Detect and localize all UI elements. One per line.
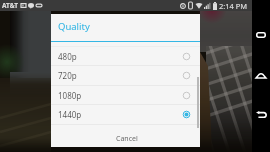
button[interactable]: Recents	[252, 26, 270, 44]
button[interactable]: 480p	[51, 47, 200, 65]
button[interactable]: Cancel	[51, 125, 200, 147]
button[interactable]: 1080p	[51, 86, 200, 104]
staticText: 480p	[58, 51, 77, 62]
staticText: AT&T	[2, 1, 18, 10]
staticText: 2:14 PM	[219, 1, 248, 11]
staticText: 720p	[58, 70, 77, 81]
staticText: Quality	[58, 20, 90, 33]
button[interactable]: 1440p	[51, 105, 200, 124]
button[interactable]: Home	[252, 67, 270, 85]
staticText: Cancel	[116, 134, 138, 144]
button[interactable]: 720p	[51, 66, 200, 85]
staticText: 1440p	[58, 109, 82, 120]
button[interactable]: Back	[252, 106, 270, 124]
staticText: 1080p	[58, 90, 82, 101]
